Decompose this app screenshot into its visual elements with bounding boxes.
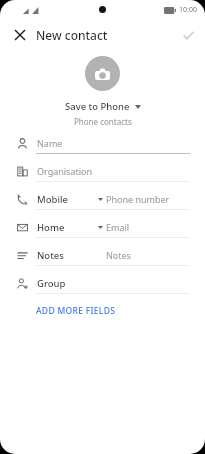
- staticText: Group: [37, 277, 66, 290]
- staticText: Notes: [106, 249, 131, 261]
- staticText: Save to Phone: [65, 100, 130, 113]
- button[interactable]: Name: [0, 131, 205, 159]
- button[interactable]: Save to Phone: [62, 99, 144, 114]
- staticText: 10:00: [179, 5, 197, 15]
- staticText: Email: [106, 221, 130, 233]
- staticText: Name: [37, 137, 63, 149]
- button[interactable]: Save contact: [178, 25, 198, 45]
- staticText: New contact: [36, 27, 108, 43]
- button[interactable]: ADD MORE FIELDS: [32, 302, 120, 320]
- staticText: Organisation: [37, 165, 93, 177]
- button[interactable]: Mobile: [0, 187, 205, 215]
- button[interactable]: Add contact photo: [85, 56, 120, 91]
- button[interactable]: Notes: [0, 243, 205, 271]
- button[interactable]: Organisation: [0, 159, 205, 187]
- staticText: Notes: [37, 249, 64, 262]
- staticText: Mobile: [37, 193, 68, 206]
- button[interactable]: Home: [0, 215, 205, 243]
- staticText: Phone number: [106, 193, 170, 205]
- staticText: Home: [37, 221, 65, 234]
- staticText: Phone contacts: [74, 116, 132, 127]
- button[interactable]: Group: [0, 271, 205, 299]
- staticText: ADD MORE FIELDS: [36, 305, 116, 317]
- button[interactable]: Close: [10, 25, 30, 45]
